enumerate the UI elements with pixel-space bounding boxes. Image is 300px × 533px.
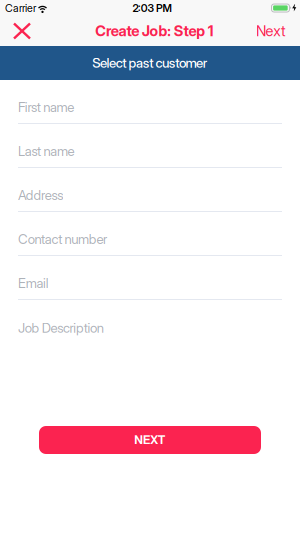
staticText: Select past customer [92, 55, 208, 71]
staticText: Job Description [18, 320, 104, 336]
staticText: Email [18, 275, 49, 291]
staticText: 2:03 PM [132, 2, 172, 14]
staticText: Last name [18, 143, 75, 159]
button[interactable]: Select past customer [0, 46, 300, 80]
staticText: Next [256, 22, 286, 40]
staticText: Contact number [18, 231, 107, 247]
button[interactable]: Next [246, 14, 300, 48]
staticText: NEXT [134, 433, 166, 447]
button[interactable]: Close [0, 16, 40, 45]
staticText: Create Job: Step 1 [95, 22, 214, 40]
staticText: Carrier [5, 2, 36, 14]
staticText: First name [18, 99, 74, 115]
button[interactable]: NEXT [39, 426, 261, 454]
staticText: Address [18, 187, 63, 203]
